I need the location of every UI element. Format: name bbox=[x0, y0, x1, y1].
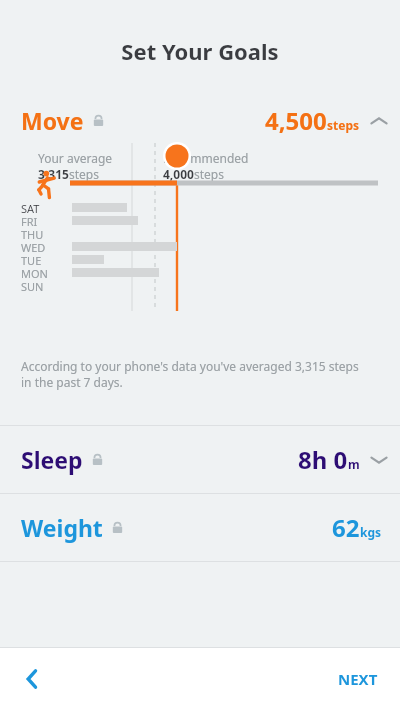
staticText: Recommended bbox=[163, 150, 249, 166]
staticText: steps bbox=[194, 166, 224, 182]
button[interactable]: Weight bbox=[0, 494, 400, 561]
staticText: MON bbox=[21, 266, 48, 279]
other: Collapse Move bbox=[370, 115, 388, 127]
staticText: According to your phone's data you've av… bbox=[21, 358, 371, 391]
staticText: steps bbox=[69, 166, 99, 182]
staticText: SUN bbox=[21, 279, 44, 292]
staticText: 8h 0 bbox=[298, 443, 348, 476]
other: Move activity bbox=[34, 170, 56, 200]
staticText: kgs bbox=[360, 524, 382, 540]
staticText: NEXT bbox=[338, 669, 378, 689]
staticText: 3,315 bbox=[38, 166, 69, 182]
staticText: WED bbox=[21, 240, 46, 253]
staticText: 4,500 bbox=[265, 104, 327, 137]
staticText: Sleep bbox=[21, 444, 83, 475]
button[interactable]: Back bbox=[8, 655, 56, 703]
button[interactable]: NEXT bbox=[316, 655, 400, 703]
staticText: Weight bbox=[21, 512, 103, 543]
staticText: Move bbox=[21, 105, 84, 136]
staticText: m bbox=[348, 456, 360, 472]
staticText: THU bbox=[21, 227, 44, 240]
staticText: Your average bbox=[38, 150, 113, 166]
staticText: 4,000 bbox=[163, 166, 194, 182]
staticText: TUE bbox=[21, 253, 42, 266]
button[interactable]: Sleep bbox=[0, 426, 400, 493]
button[interactable]: Move bbox=[0, 98, 400, 143]
staticText: 62 bbox=[332, 511, 360, 544]
staticText: steps bbox=[327, 117, 360, 133]
staticText: SAT bbox=[21, 201, 40, 214]
staticText: Set Your Goals bbox=[121, 36, 279, 66]
staticText: FRI bbox=[21, 214, 38, 227]
